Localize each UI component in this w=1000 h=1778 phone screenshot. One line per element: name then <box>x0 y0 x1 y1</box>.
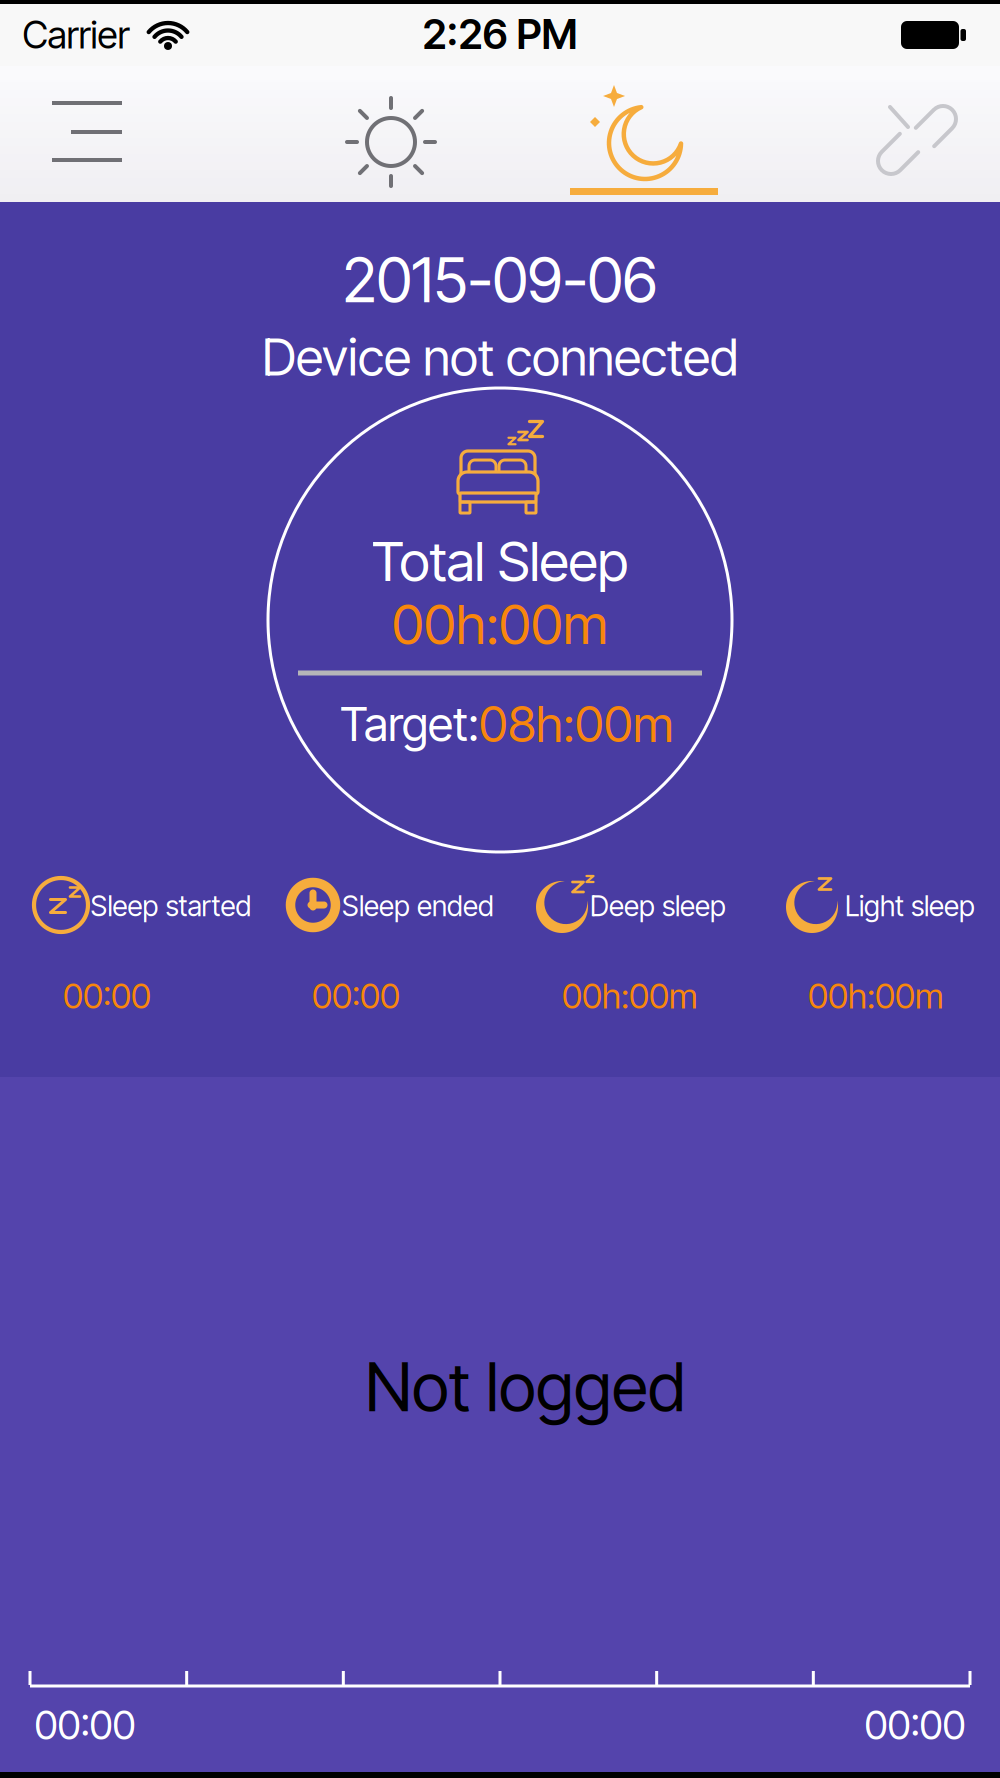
staticText: Sleep started <box>90 889 251 922</box>
staticText: 2:26 PM <box>422 10 577 58</box>
button[interactable]: Menu <box>42 86 132 176</box>
staticText: Device not connected <box>262 327 738 387</box>
staticText: Target: <box>340 696 479 752</box>
staticText: 00h:00m <box>392 592 608 656</box>
button[interactable]: Connect device <box>869 95 965 185</box>
staticText: 00:00 <box>864 1701 965 1749</box>
staticText: Total Sleep <box>371 529 628 593</box>
staticText: 00:00 <box>63 976 151 1016</box>
staticText: 2015-09-06 <box>342 244 657 316</box>
staticText: 00h:00m <box>562 976 698 1016</box>
staticText: Carrier <box>22 13 129 57</box>
staticText: Light sleep <box>845 889 975 922</box>
staticText: 00:00 <box>312 976 400 1016</box>
staticText: 00:00 <box>34 1701 135 1749</box>
staticText: 08h:00m <box>479 695 674 753</box>
button[interactable]: Sleep <box>557 68 727 198</box>
staticText: Sleep ended <box>342 889 494 922</box>
staticText: Not logged <box>365 1348 685 1426</box>
staticText: 00h:00m <box>808 976 944 1016</box>
button[interactable]: Day activity <box>341 92 441 192</box>
staticText: Deep sleep <box>590 889 726 922</box>
